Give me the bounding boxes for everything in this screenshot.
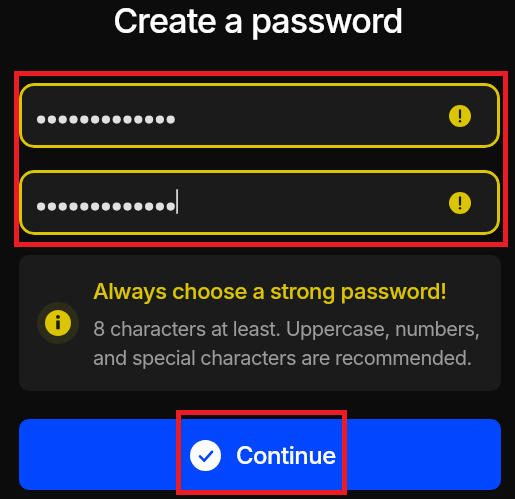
other: Password error <box>449 192 471 214</box>
button[interactable]: Password error <box>19 170 500 235</box>
other: Password error <box>449 105 471 127</box>
staticText: Always choose a strong password! <box>93 278 447 305</box>
button[interactable]: Password error <box>19 83 500 148</box>
button[interactable]: Continue <box>19 419 501 490</box>
staticText: 8 characters at least. Uppercase, number… <box>93 317 488 370</box>
staticText: Continue <box>236 441 336 470</box>
staticText: Create a password <box>113 0 403 41</box>
